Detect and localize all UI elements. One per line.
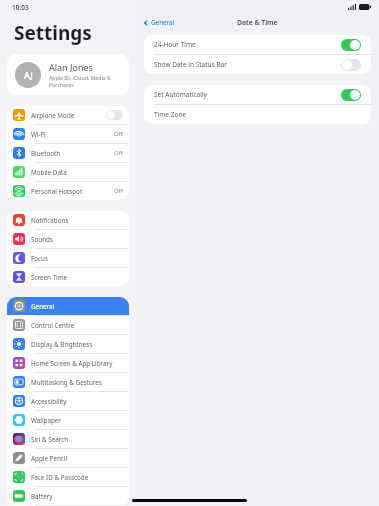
staticText: Wi-Fi [31, 130, 46, 139]
staticText: Airplane Mode [31, 111, 75, 120]
staticText: Battery [31, 492, 53, 501]
button[interactable]: Display & Brightness [7, 335, 129, 353]
button[interactable]: Screen Time [7, 268, 129, 286]
button[interactable]: 24-Hour Time [144, 35, 371, 54]
staticText: Time Zone [154, 110, 187, 119]
staticText: Apple ID, iCloud, Media & Purchases [49, 74, 121, 88]
button[interactable]: Mobile Data [7, 163, 129, 181]
staticText: 10:03 [12, 3, 29, 12]
button[interactable]: Personal Hotspot [7, 182, 129, 200]
staticText: Focus [31, 254, 49, 263]
staticText: Wallpaper [31, 416, 61, 425]
button[interactable]: Toggle [341, 39, 361, 51]
staticText: Sounds [31, 235, 53, 244]
button[interactable]: Apple Pencil [7, 449, 129, 467]
button[interactable]: Wallpaper [7, 411, 129, 429]
button[interactable]: Sounds [7, 230, 129, 248]
staticText: 24-Hour Time [154, 40, 196, 49]
staticText: General [31, 302, 55, 311]
staticText: Multitasking & Gestures [31, 378, 102, 387]
staticText: Settings [14, 20, 92, 46]
staticText: Accessibility [31, 397, 67, 406]
button[interactable]: Face ID & Passcode [7, 468, 129, 486]
button[interactable]: Toggle [341, 59, 361, 71]
staticText: Control Centre [31, 321, 75, 330]
button[interactable]: Set Automatically [144, 85, 371, 104]
button[interactable]: General [136, 16, 181, 29]
button[interactable]: Accessibility [7, 392, 129, 410]
staticText: Home Screen & App Library [31, 359, 113, 368]
staticText: Apple Pencil [31, 454, 68, 463]
button[interactable]: AJ [7, 54, 129, 95]
button[interactable]: Control Centre [7, 316, 129, 334]
button[interactable]: Siri & Search [7, 430, 129, 448]
staticText: Off [114, 187, 123, 195]
staticText: Bluetooth [31, 149, 61, 158]
button[interactable]: Notifications [7, 211, 129, 229]
button[interactable]: General [7, 297, 129, 315]
staticText: Display & Brightness [31, 340, 93, 349]
staticText: Mobile Data [31, 168, 67, 177]
button[interactable]: Home Screen & App Library [7, 354, 129, 372]
button[interactable]: Toggle [106, 110, 123, 120]
button[interactable]: Time Zone [144, 105, 371, 124]
staticText: AJ [24, 69, 33, 81]
button[interactable]: Airplane Mode [7, 106, 129, 124]
staticText: Face ID & Passcode [31, 473, 89, 482]
button[interactable]: Multitasking & Gestures [7, 373, 129, 391]
button[interactable]: Wi-Fi [7, 125, 129, 143]
staticText: Off [114, 149, 123, 157]
staticText: Personal Hotspot [31, 187, 83, 196]
button[interactable]: Toggle [341, 89, 361, 101]
button[interactable]: Show Date in Status Bar [144, 55, 371, 74]
staticText: General [151, 18, 175, 27]
staticText: Show Date in Status Bar [154, 60, 227, 69]
staticText: Alan Jones [49, 61, 93, 73]
staticText: Date & Time [237, 18, 278, 27]
staticText: Siri & Search [31, 435, 69, 444]
button[interactable]: Focus [7, 249, 129, 267]
button[interactable]: Bluetooth [7, 144, 129, 162]
staticText: Set Automatically [154, 90, 207, 99]
button[interactable]: Battery [7, 487, 129, 505]
staticText: Notifications [31, 216, 69, 225]
staticText: Off [114, 130, 123, 138]
staticText: Screen Time [31, 273, 68, 282]
